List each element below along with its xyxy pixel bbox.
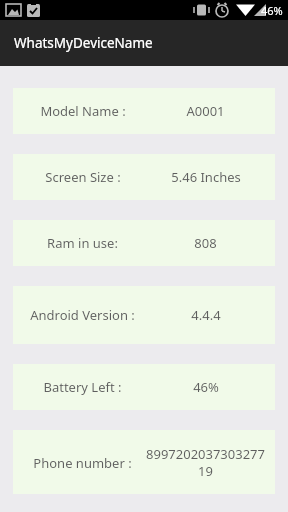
staticText: Battery Left : bbox=[43, 378, 122, 396]
button[interactable]: Model Name : bbox=[13, 88, 275, 134]
button[interactable]: Battery Left : bbox=[13, 364, 275, 410]
staticText: 46% bbox=[261, 3, 283, 18]
button[interactable]: Android Version : bbox=[13, 286, 275, 344]
button[interactable]: Ram in use: bbox=[13, 220, 275, 266]
staticText: 808 bbox=[194, 234, 217, 252]
staticText: WhatsMyDeviceName bbox=[14, 34, 153, 52]
staticText: 46% bbox=[193, 378, 219, 396]
staticText: 5.46 Inches bbox=[171, 168, 241, 186]
staticText: Model Name : bbox=[40, 102, 126, 120]
staticText: 899720203730327719 bbox=[144, 445, 267, 480]
button[interactable]: Screen Size : bbox=[13, 154, 275, 200]
button[interactable]: WhatsMyDeviceName bbox=[0, 20, 288, 66]
staticText: Android Version : bbox=[30, 306, 135, 324]
staticText: Screen Size : bbox=[45, 168, 121, 186]
staticText: Phone number : bbox=[33, 454, 132, 472]
staticText: A0001 bbox=[186, 102, 225, 120]
staticText: 4.4.4 bbox=[191, 306, 221, 324]
button[interactable]: Phone number : bbox=[13, 430, 275, 494]
staticText: Ram in use: bbox=[47, 234, 118, 252]
